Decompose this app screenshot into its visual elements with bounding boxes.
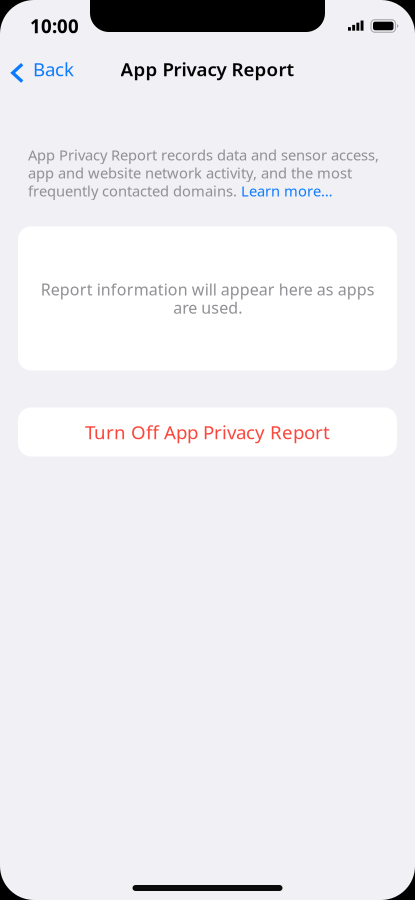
staticText: App Privacy Report [120, 57, 294, 81]
button[interactable]: Turn Off App Privacy Report [18, 407, 397, 456]
button[interactable]: Back [0, 47, 86, 90]
staticText: Turn Off App Privacy Report [85, 419, 330, 444]
staticText: Report information will appear here as a… [40, 279, 374, 318]
staticText: App Privacy Report records data and sens… [28, 145, 379, 200]
staticText: 10:00 [30, 14, 79, 38]
staticText: Back [33, 57, 74, 81]
